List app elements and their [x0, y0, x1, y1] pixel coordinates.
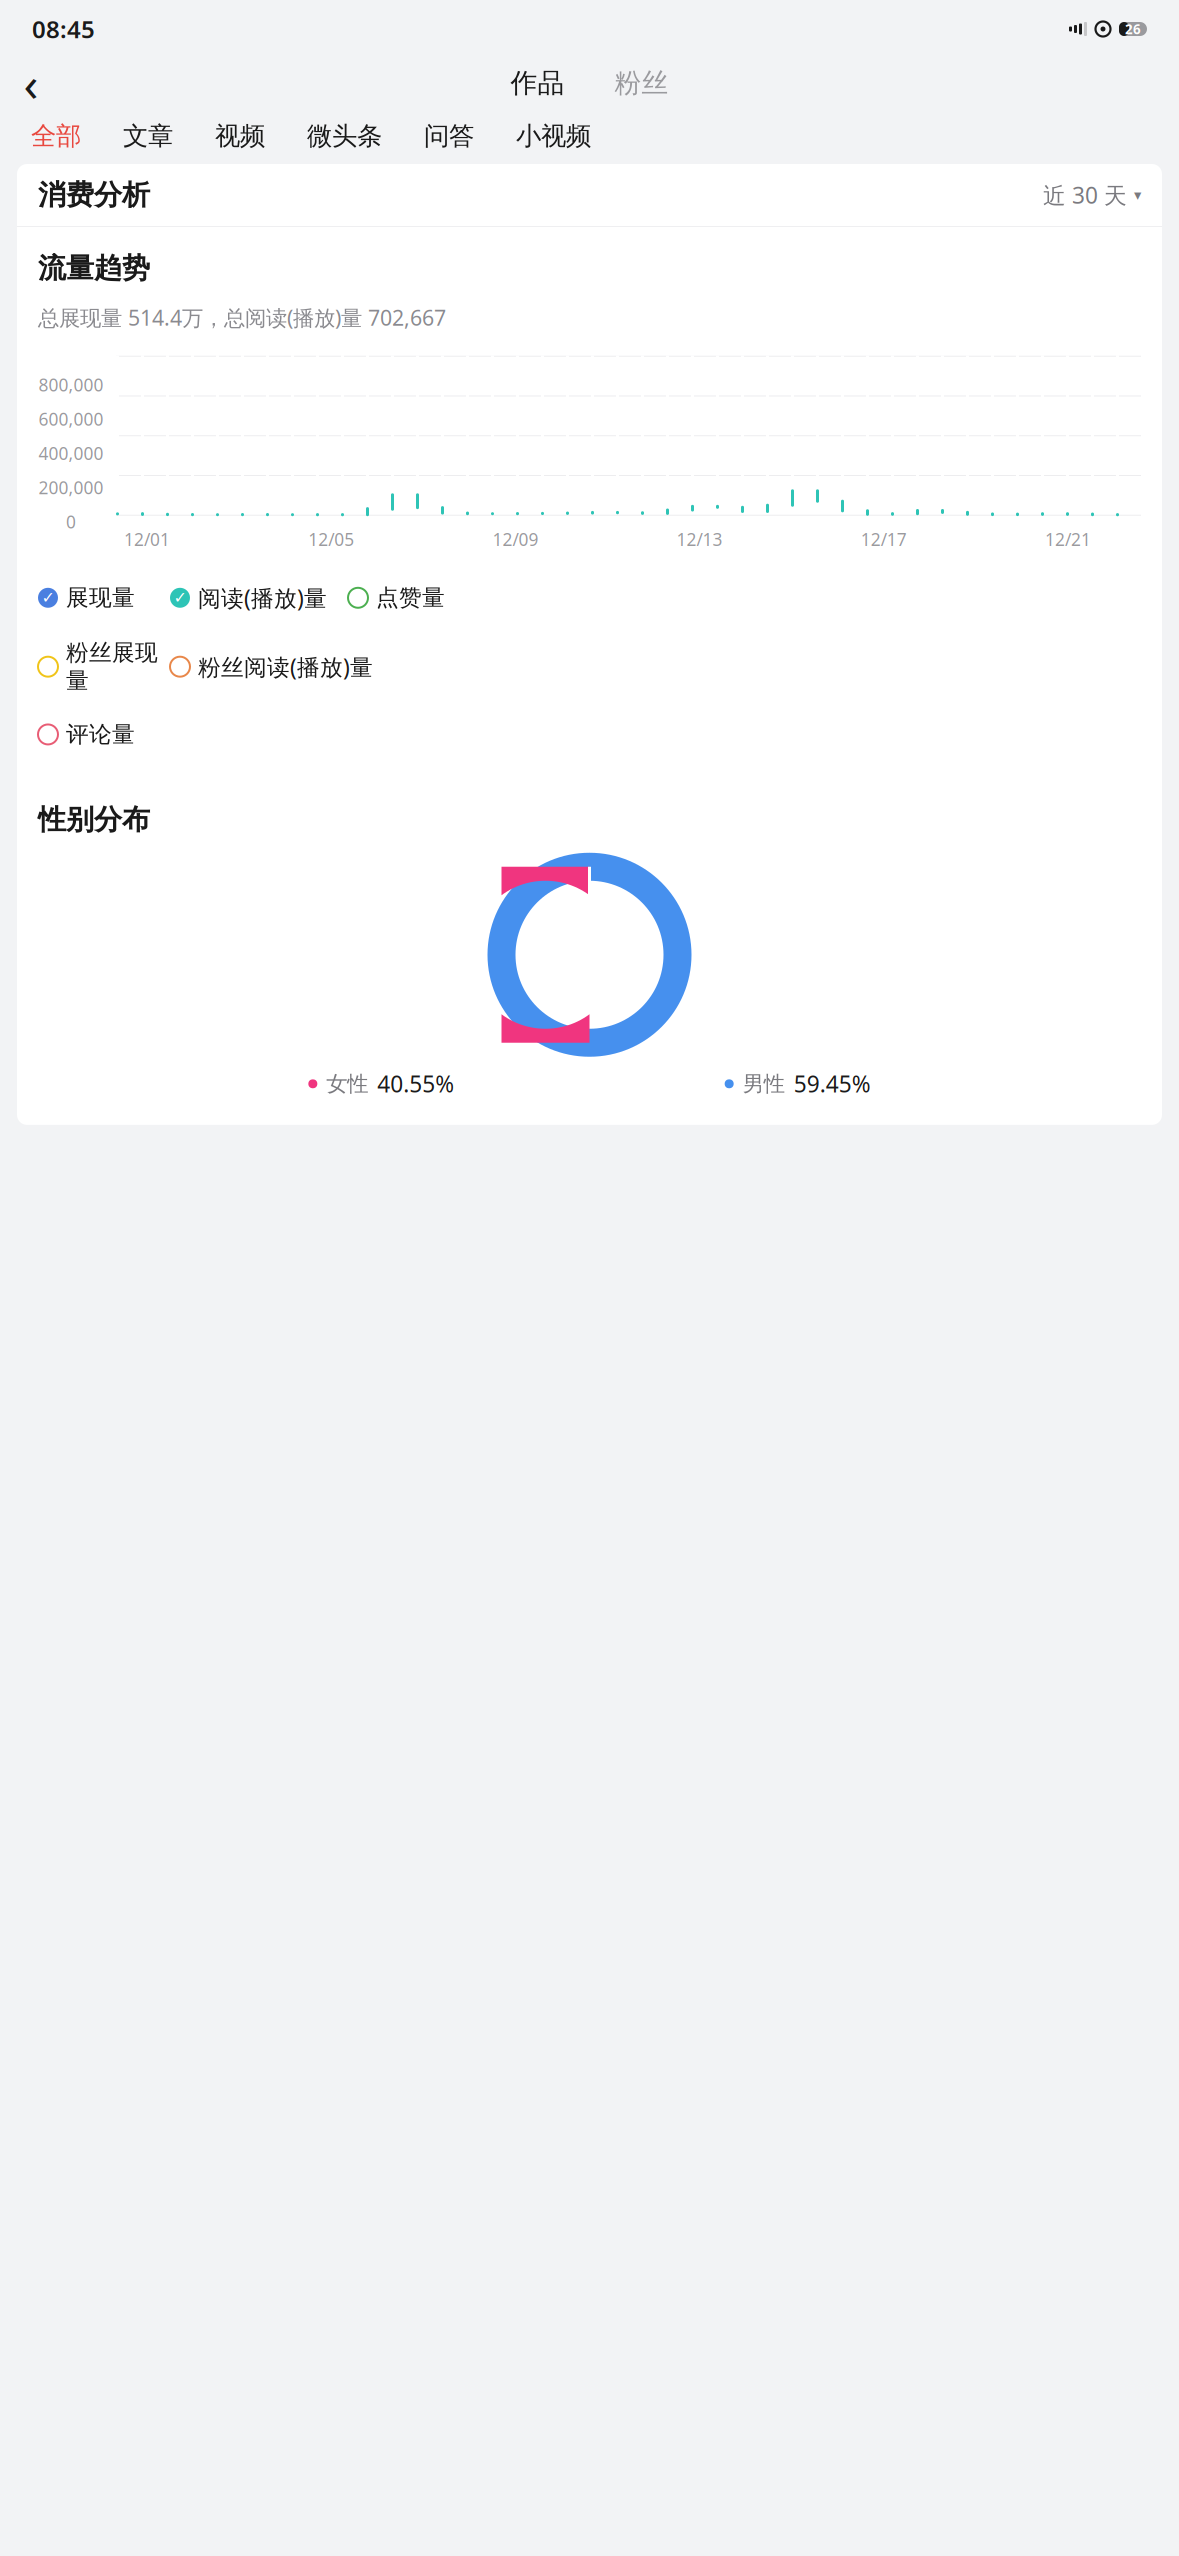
staticText: 粉丝展现量: [66, 639, 158, 694]
staticText: 全部: [31, 120, 81, 151]
staticText: 阅读(播放)量: [198, 583, 327, 613]
staticText: 12/01: [124, 528, 170, 551]
staticText: 评论量: [66, 720, 135, 748]
staticText: 性别分布: [38, 802, 150, 837]
staticText: 消费分析: [38, 178, 150, 212]
button[interactable]: 小视频: [495, 110, 612, 161]
button[interactable]: 全部: [10, 110, 102, 161]
staticText: 12/09: [492, 528, 538, 551]
staticText: 600,000: [38, 407, 103, 430]
button[interactable]: 点赞量: [348, 578, 445, 618]
staticText: 小视频: [516, 120, 591, 151]
staticText: ✓: [173, 589, 186, 607]
button[interactable]: 近 30 天: [1043, 172, 1141, 218]
staticText: 12/05: [308, 528, 354, 551]
button[interactable]: 作品: [502, 61, 572, 105]
staticText: 作品: [510, 67, 564, 99]
staticText: ▾: [1134, 187, 1141, 203]
button[interactable]: 粉丝展现量: [38, 633, 158, 700]
staticText: 59.45%: [794, 1069, 871, 1099]
button[interactable]: 微头条: [286, 110, 403, 161]
button[interactable]: 视频: [194, 110, 286, 161]
staticText: ‹: [23, 51, 38, 115]
staticText: 26: [1125, 20, 1141, 38]
staticText: 粉丝: [614, 67, 668, 99]
staticText: 女性: [326, 1071, 368, 1097]
staticText: 12/21: [1045, 528, 1091, 551]
button[interactable]: 粉丝阅读(播放)量: [170, 646, 373, 688]
staticText: 微头条: [307, 120, 382, 151]
staticText: 男性: [743, 1071, 785, 1097]
staticText: 展现量: [66, 584, 135, 612]
staticText: 12/17: [861, 528, 907, 551]
staticText: 总展现量 514.4万，总阅读(播放)量 702,667: [38, 303, 446, 332]
staticText: 近 30 天: [1043, 180, 1127, 210]
staticText: 视频: [215, 120, 265, 151]
staticText: 08:45: [32, 13, 95, 45]
staticText: 800,000: [38, 373, 103, 396]
staticText: 40.55%: [377, 1069, 454, 1099]
staticText: 流量趋势: [38, 251, 150, 285]
button[interactable]: 评论量: [38, 714, 135, 754]
staticText: 200,000: [38, 476, 103, 499]
button[interactable]: 文章: [102, 110, 194, 161]
button[interactable]: Back: [8, 60, 54, 106]
staticText: 12/13: [677, 528, 723, 551]
staticText: 粉丝阅读(播放)量: [198, 652, 373, 682]
button[interactable]: ✓: [170, 577, 327, 619]
button[interactable]: 粉丝: [606, 61, 676, 105]
staticText: 点赞量: [376, 584, 445, 612]
staticText: 0: [66, 510, 76, 533]
staticText: 问答: [424, 120, 474, 151]
staticText: 400,000: [38, 442, 103, 465]
button[interactable]: 问答: [403, 110, 495, 161]
button[interactable]: ✓: [38, 578, 135, 618]
staticText: 文章: [123, 120, 173, 151]
staticText: ✓: [41, 589, 54, 607]
